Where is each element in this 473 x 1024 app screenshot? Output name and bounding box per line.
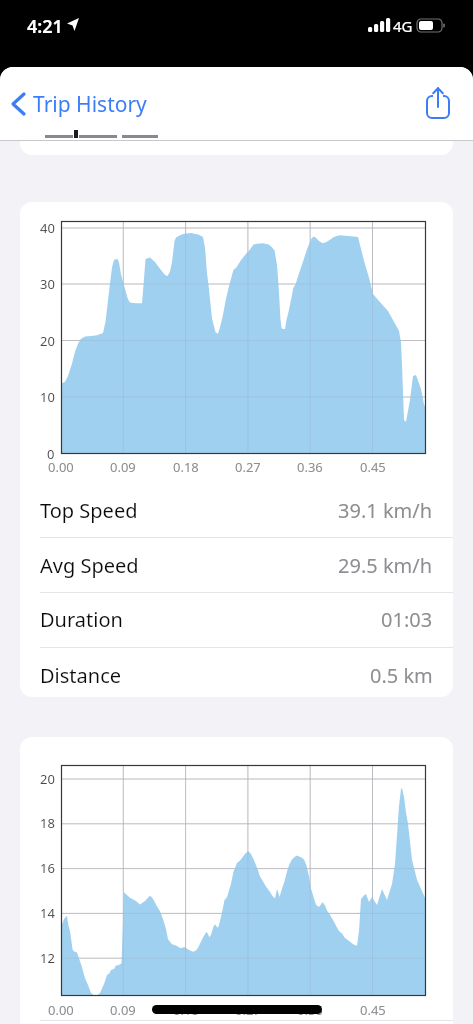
button[interactable]: Distance [20, 648, 453, 697]
staticText: 0.00 [48, 1001, 74, 1019]
staticText: 0.27 [235, 1001, 261, 1019]
staticText: Top Speed [40, 497, 138, 524]
staticText: Duration [40, 606, 123, 633]
staticText: 4:21 [27, 14, 63, 39]
staticText: 0.5 km [370, 662, 433, 689]
staticText: 20 [40, 332, 55, 350]
button[interactable]: Avg Speed [20, 538, 453, 592]
staticText: 20 [40, 770, 55, 788]
staticText: 40 [40, 219, 55, 237]
staticText: 4G [393, 16, 413, 36]
staticText: 0.45 [360, 1001, 386, 1019]
staticText: 0.27 [235, 458, 261, 476]
button[interactable]: Duration [20, 592, 453, 646]
staticText: Distance [40, 662, 122, 689]
staticText: 16 [40, 859, 55, 877]
staticText: Avg Speed [40, 552, 139, 579]
staticText: 0.36 [297, 458, 323, 476]
button[interactable] [420, 82, 460, 126]
staticText: 12 [40, 949, 55, 967]
button[interactable]: Top Speed [20, 483, 453, 537]
staticText: 0.18 [173, 458, 199, 476]
staticText: 0.00 [48, 458, 74, 476]
button[interactable] [152, 1005, 322, 1014]
staticText: 0 [47, 445, 55, 463]
staticText: 01:03 [381, 606, 433, 633]
staticText: 39.1 km/h [338, 497, 433, 524]
staticText: 0.18 [173, 1001, 199, 1019]
staticText: Trip History [33, 90, 147, 119]
staticText: 10 [40, 388, 55, 406]
staticText: 0.36 [297, 1001, 323, 1019]
button[interactable]: Trip History [6, 84, 166, 124]
staticText: 30 [40, 275, 55, 293]
staticText: 18 [40, 814, 55, 832]
staticText: 0.09 [110, 1001, 136, 1019]
staticText: 0.45 [360, 458, 386, 476]
staticText: 14 [40, 904, 55, 922]
staticText: 0.09 [110, 458, 136, 476]
staticText: 29.5 km/h [338, 552, 433, 579]
